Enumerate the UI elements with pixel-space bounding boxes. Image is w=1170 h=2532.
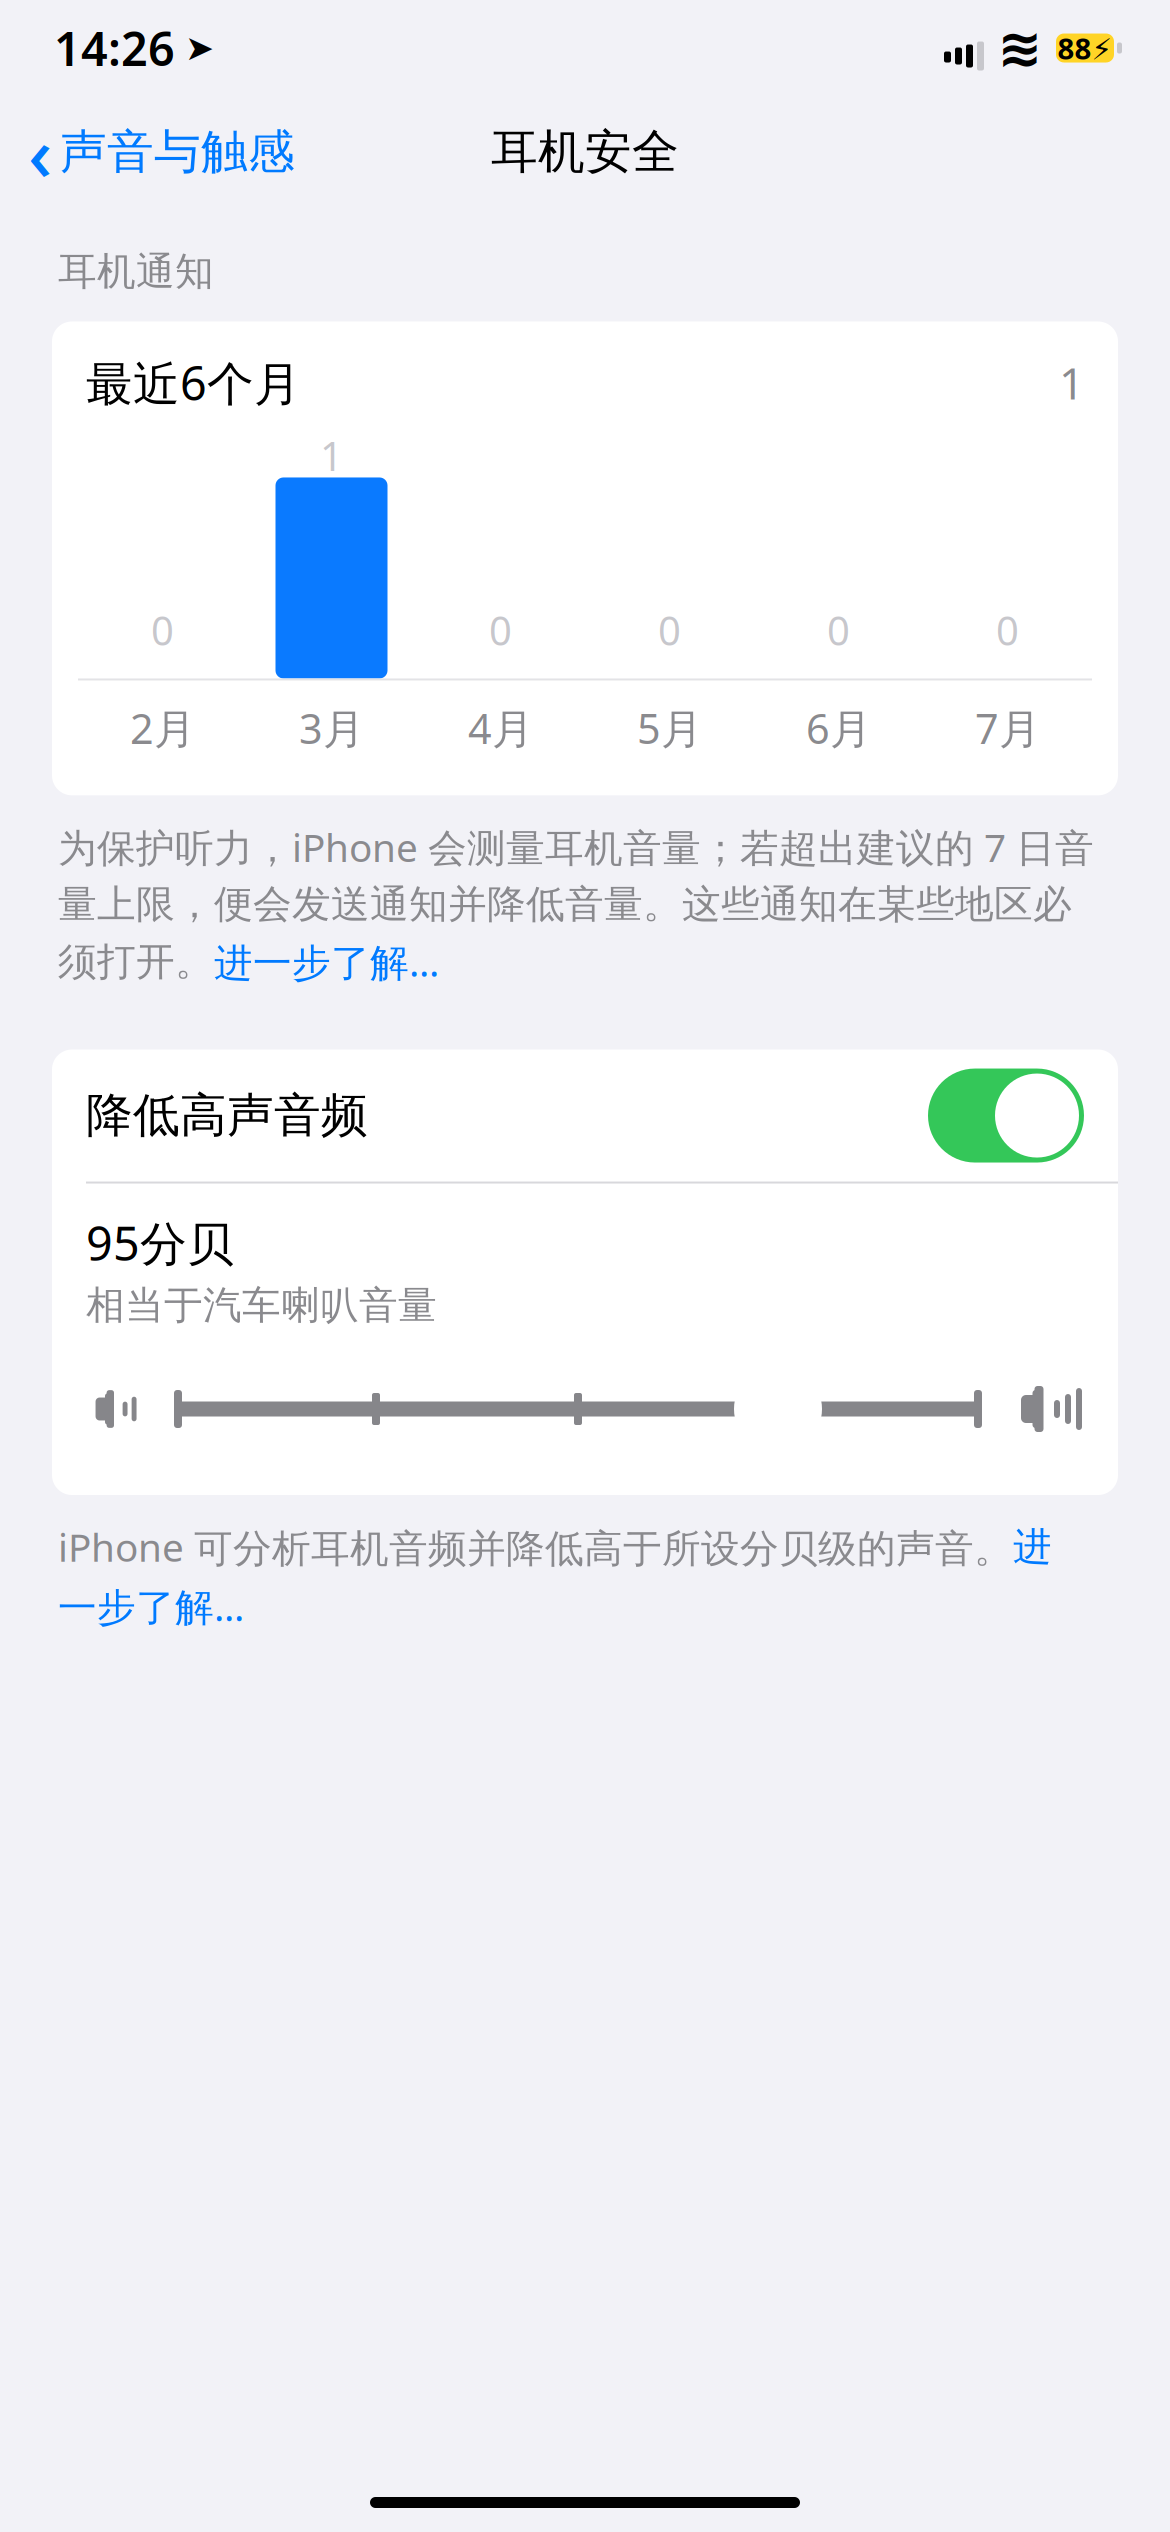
staticText: 6月 (806, 700, 871, 755)
staticText: 7月 (975, 700, 1040, 755)
button[interactable]: 降低高声音频 (52, 1049, 1118, 1181)
staticText: 1 (320, 429, 343, 482)
staticText: 0 (151, 603, 174, 656)
staticText: 2月 (130, 700, 195, 755)
button[interactable]: iPhone 可分析耳机音频并降低高于所设分贝级的声音。 (0, 1521, 1170, 1632)
button[interactable]: 为保护听力，iPhone 会测量耳机音量；若超出建议的 7 日音 (0, 821, 1170, 988)
staticText: 为保护听力，iPhone 会测量耳机音量；若超出建议的 7 日音 (58, 821, 1094, 873)
staticText: 声音与触感 (60, 123, 295, 181)
staticText: 须打开。 (58, 938, 214, 986)
staticText: 14:26 (54, 17, 175, 79)
staticText: 相当于汽车喇叭音量 (86, 1281, 437, 1329)
staticText: 耳机安全 (491, 123, 679, 181)
staticText: 5月 (637, 700, 702, 755)
staticText: 0 (996, 603, 1019, 656)
staticText: 3月 (299, 700, 364, 755)
staticText: 进一步了解... (214, 936, 439, 987)
staticText: ‹ (28, 102, 52, 202)
staticText: 一步了解... (58, 1581, 244, 1632)
staticText: 1 (1059, 353, 1084, 412)
staticText: 95分贝 (86, 1211, 234, 1273)
staticText: 进 (1013, 1523, 1052, 1570)
staticText: iPhone 可分析耳机音频并降低高于所设分贝级的声音。 (58, 1521, 1013, 1572)
staticText: ➤ (185, 28, 214, 68)
button[interactable]: ‹ (0, 94, 309, 210)
staticText: 0 (658, 603, 681, 656)
staticText: 耳机通知 (58, 248, 214, 295)
staticText: 降低高声音频 (86, 1087, 368, 1144)
staticText: 最近6个月 (86, 351, 301, 413)
staticText: 88⚡︎ (1057, 28, 1112, 67)
staticText: 量上限，便会发送通知并降低音量。这些通知在某些地区必 (58, 881, 1072, 928)
staticText: 4月 (468, 700, 533, 755)
staticText: 0 (489, 603, 512, 656)
staticText: ≋ (997, 18, 1042, 78)
staticText: 0 (827, 603, 850, 656)
